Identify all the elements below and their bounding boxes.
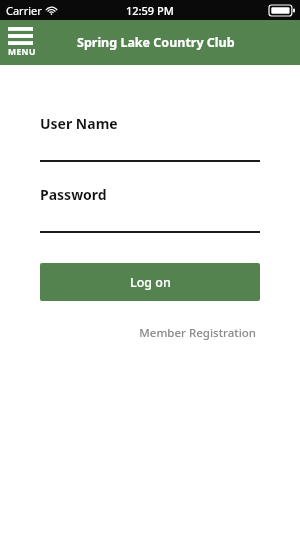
staticText: Log on bbox=[130, 274, 171, 291]
staticText: MENU bbox=[8, 46, 36, 58]
button[interactable]: Menu bbox=[8, 25, 36, 60]
staticText: Password bbox=[40, 185, 107, 204]
staticText: Member Registration bbox=[139, 325, 256, 341]
staticText: Spring Lake Country Club bbox=[77, 34, 235, 51]
staticText: User Name bbox=[40, 114, 118, 133]
staticText: Carrier bbox=[6, 3, 42, 18]
button[interactable]: Log on bbox=[40, 263, 260, 301]
staticText: 12:59 PM bbox=[126, 3, 174, 18]
button[interactable]: Member Registration bbox=[135, 322, 260, 344]
